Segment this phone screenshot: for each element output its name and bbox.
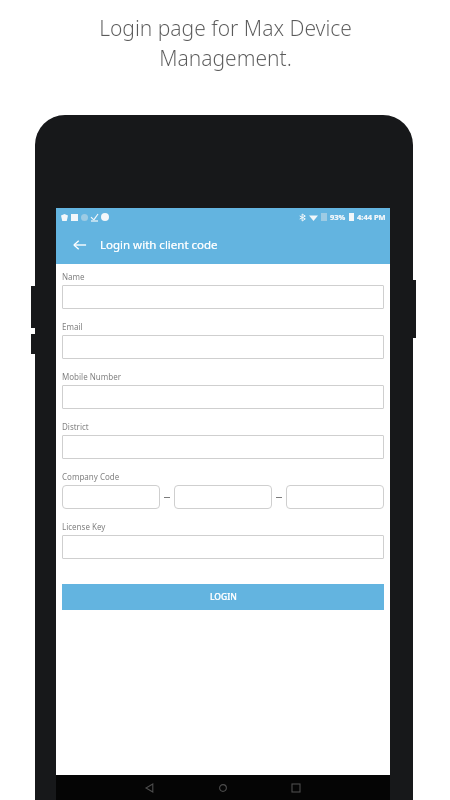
button[interactable] bbox=[62, 335, 384, 359]
button[interactable]: Recents bbox=[286, 778, 306, 798]
staticText: Login with client code bbox=[100, 237, 218, 253]
staticText: LOGIN bbox=[210, 591, 237, 603]
button[interactable] bbox=[286, 485, 384, 509]
staticText: 93% bbox=[330, 212, 346, 222]
button[interactable] bbox=[62, 485, 160, 509]
button[interactable] bbox=[174, 485, 272, 509]
button[interactable]: Back bbox=[66, 231, 94, 259]
button[interactable]: Home bbox=[213, 778, 233, 798]
staticText: Mobile Number bbox=[62, 371, 121, 382]
staticText: 4:44 PM bbox=[357, 212, 386, 222]
button[interactable] bbox=[62, 285, 384, 309]
staticText: License Key bbox=[62, 521, 106, 532]
button[interactable]: LOGIN bbox=[62, 584, 384, 610]
button[interactable]: Back bbox=[140, 778, 160, 798]
staticText: District bbox=[62, 421, 89, 432]
staticText: Login page for Max Device Management. bbox=[99, 14, 352, 72]
staticText: Company Code bbox=[62, 471, 120, 482]
button[interactable] bbox=[62, 385, 384, 409]
staticText: Name bbox=[62, 271, 85, 282]
button[interactable] bbox=[62, 535, 384, 559]
staticText: Email bbox=[62, 321, 83, 332]
button[interactable] bbox=[62, 435, 384, 459]
